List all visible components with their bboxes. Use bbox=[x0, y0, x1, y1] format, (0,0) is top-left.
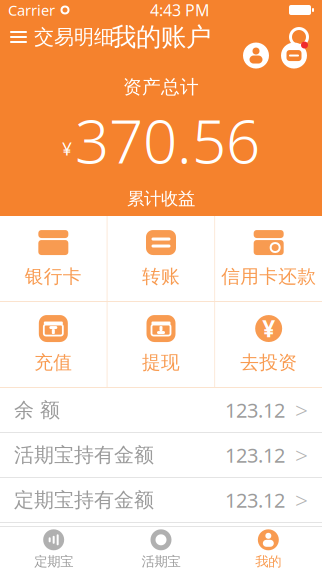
staticText: 去投资 bbox=[240, 351, 297, 374]
button[interactable]: 余 额 bbox=[0, 388, 322, 432]
staticText: ¥ bbox=[62, 137, 72, 160]
staticText: 信用卡还款 bbox=[221, 265, 316, 288]
staticText: 活期宝持有金额 bbox=[14, 443, 154, 467]
button[interactable]: Profile bbox=[242, 41, 270, 69]
staticText: Carrier bbox=[8, 0, 55, 20]
button[interactable]: ¥ bbox=[215, 302, 322, 387]
staticText: 充值 bbox=[34, 351, 72, 374]
staticText: ¥ bbox=[262, 313, 275, 344]
staticText: 定期宝 bbox=[34, 553, 73, 570]
button[interactable]: 交易明细 bbox=[0, 20, 124, 54]
staticText: 370.56 bbox=[75, 100, 260, 180]
button[interactable]: 活期宝持有金额 bbox=[0, 433, 322, 477]
button[interactable]: Settings bbox=[276, 20, 322, 54]
button[interactable]: 定期宝 bbox=[0, 527, 107, 572]
staticText: > bbox=[295, 440, 308, 470]
staticText: 累计收益 bbox=[127, 188, 195, 209]
staticText: 提现 bbox=[142, 351, 180, 374]
staticText: > bbox=[295, 485, 308, 515]
staticText: 我的账户 bbox=[111, 21, 211, 52]
button[interactable]: 充值 bbox=[0, 302, 107, 387]
button[interactable]: 我的 bbox=[215, 527, 322, 572]
button[interactable]: 提现 bbox=[108, 302, 214, 387]
button[interactable]: 定期宝持有金额 bbox=[0, 478, 322, 522]
staticText: 定期宝持有金额 bbox=[14, 488, 154, 512]
button[interactable]: 转账 bbox=[108, 216, 214, 301]
staticText: 资产总计 bbox=[123, 75, 199, 98]
staticText: 余 额 bbox=[14, 398, 60, 422]
staticText: 交易明细 bbox=[34, 25, 114, 49]
staticText: 我的 bbox=[255, 553, 281, 570]
staticText: 活期宝 bbox=[141, 553, 180, 570]
button[interactable]: 银行卡 bbox=[0, 216, 107, 301]
staticText: 银行卡 bbox=[25, 265, 82, 288]
button[interactable]: Messages bbox=[280, 41, 308, 69]
staticText: 4:43 PM bbox=[150, 0, 210, 21]
staticText: > bbox=[295, 395, 308, 425]
staticText: 123.12 bbox=[225, 442, 285, 468]
staticText: 123.12 bbox=[225, 397, 285, 423]
staticText: ¥ 1.20 bbox=[136, 213, 186, 236]
button[interactable]: 信用卡还款 bbox=[215, 216, 322, 301]
staticText: 123.12 bbox=[225, 487, 285, 513]
staticText: 转账 bbox=[142, 265, 180, 288]
button[interactable]: 活期宝 bbox=[107, 527, 215, 572]
